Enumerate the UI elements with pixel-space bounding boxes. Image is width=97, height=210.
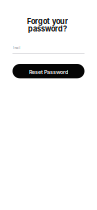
- staticText: Reset Password: [29, 69, 68, 75]
- staticText: Forgot your: [27, 17, 68, 26]
- staticText: Email: [12, 46, 20, 50]
- staticText: password?: [28, 24, 67, 33]
- button[interactable]: Reset Password: [12, 64, 84, 78]
